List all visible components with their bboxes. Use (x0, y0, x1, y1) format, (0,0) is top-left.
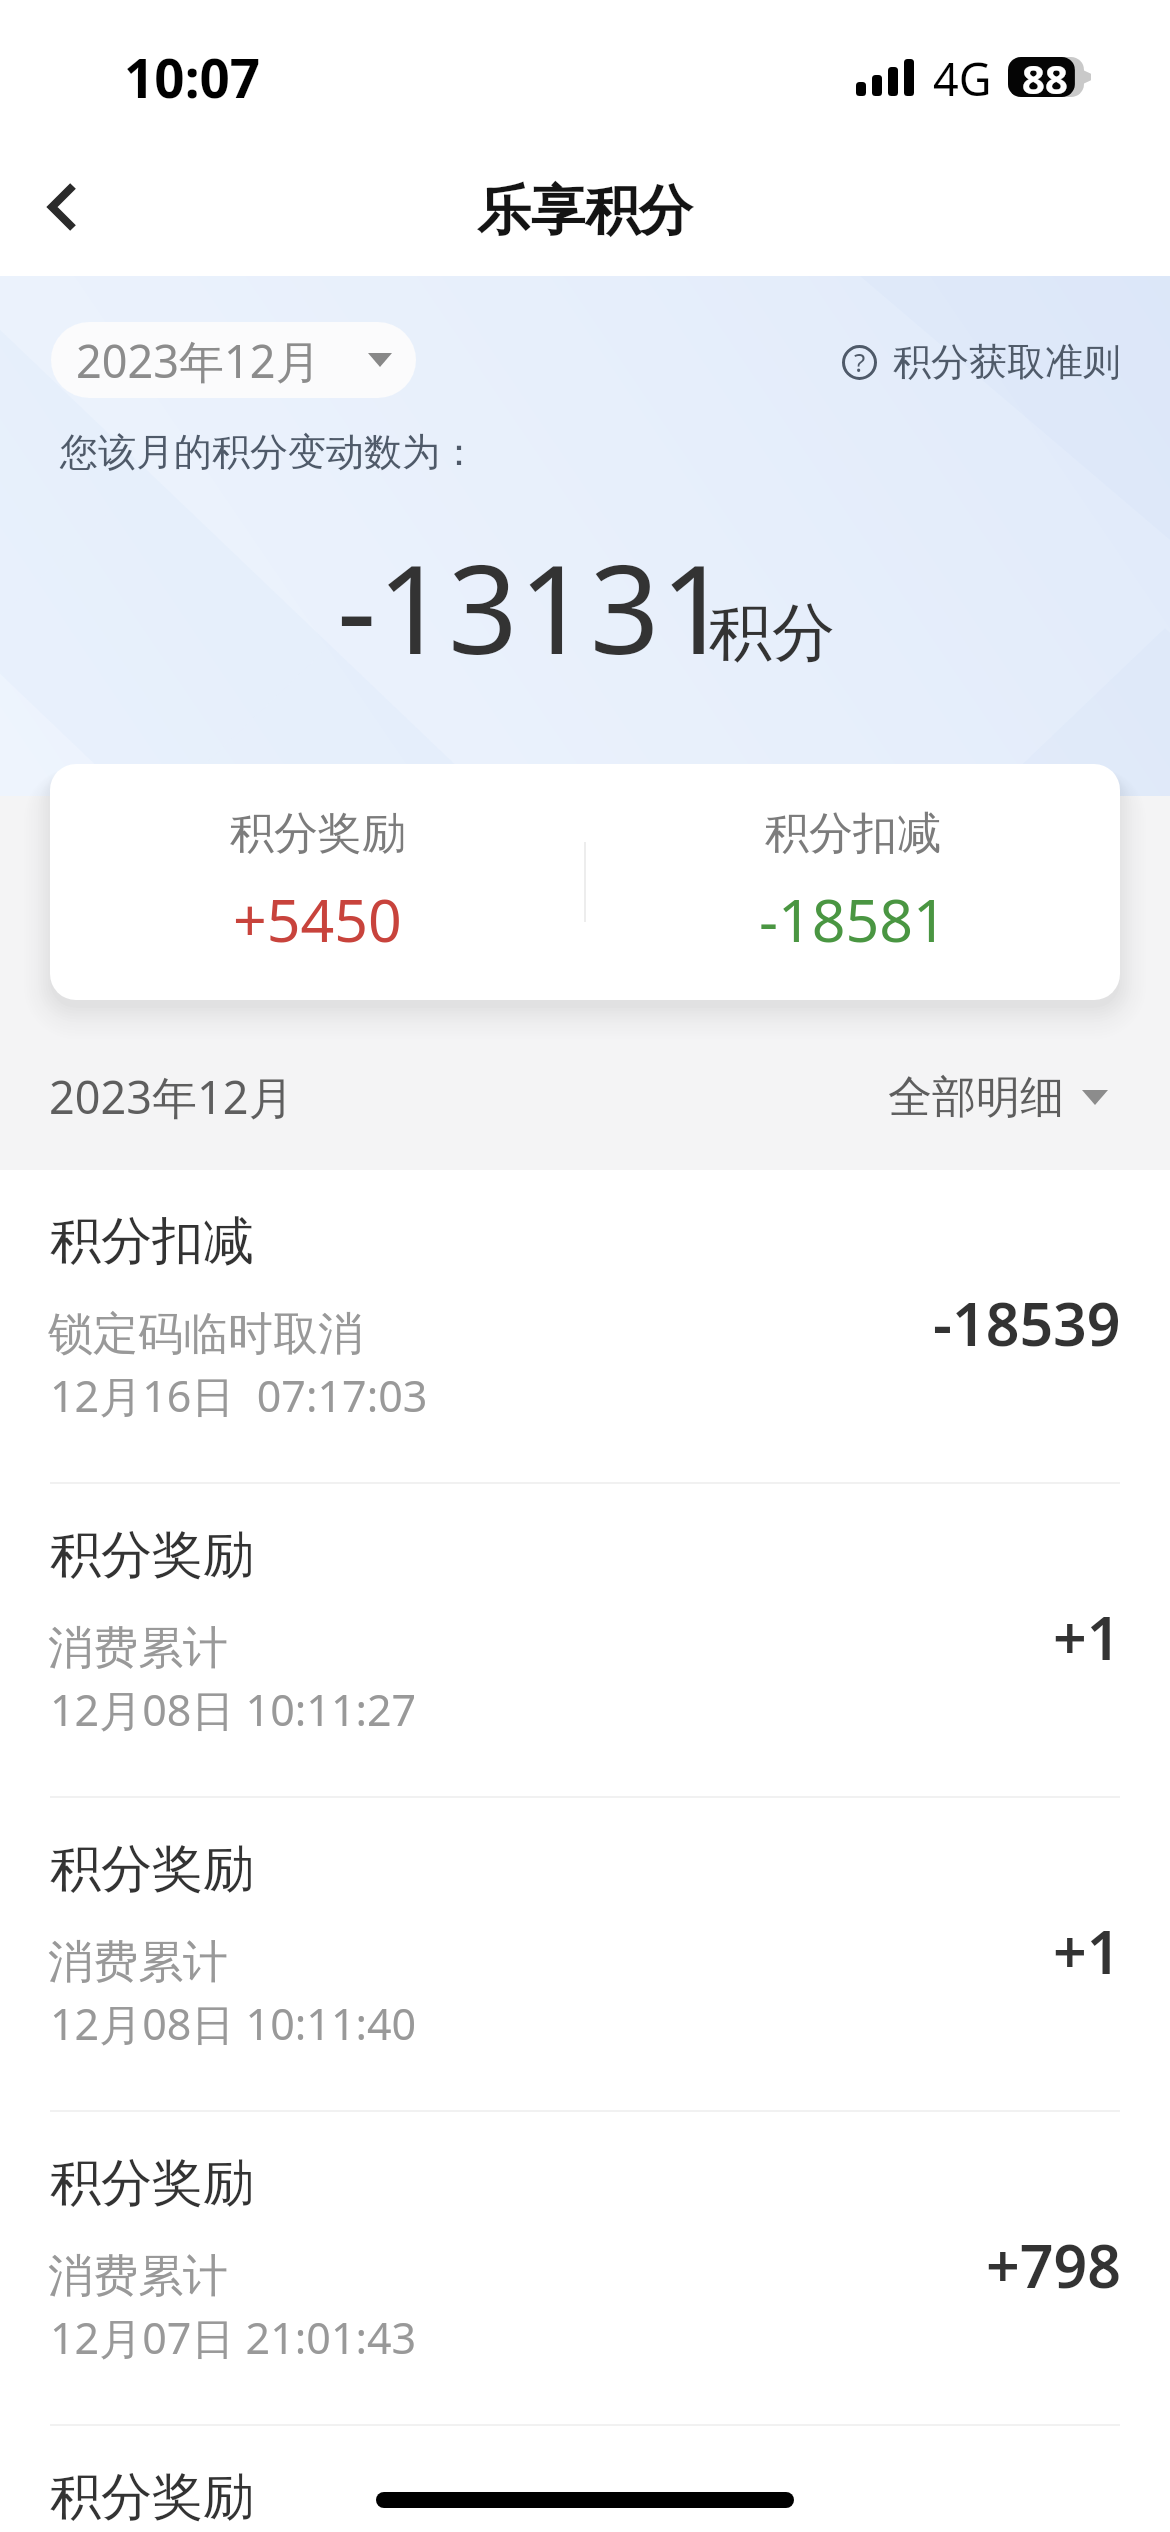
staticText: 积分奖励 (50, 2151, 254, 2215)
staticText: 积分奖励 (50, 1523, 254, 1587)
button[interactable]: 积分奖励 (0, 2426, 1170, 2532)
staticText: 2023年12月 (76, 330, 321, 391)
staticText: 您该月的积分变动数为： (60, 428, 478, 476)
staticText: -18539 (933, 1283, 1121, 1363)
staticText: 2023年12月 (49, 1066, 294, 1127)
staticText: +5450 (233, 879, 402, 959)
button[interactable]: Back (10, 149, 114, 265)
staticText: 积分奖励 (230, 806, 406, 861)
staticText: 消费累计 (48, 1934, 228, 1991)
button[interactable]: 积分奖励 (0, 1484, 1170, 1798)
staticText: 消费累计 (48, 1620, 228, 1677)
staticText: 12月08日 10:11:40 (50, 1994, 417, 2053)
staticText: +798 (986, 2225, 1121, 2305)
staticText: 锁定码临时取消 (48, 1306, 363, 1363)
button[interactable]: 积分奖励 (0, 1798, 1170, 2112)
staticText: 乐享积分 (477, 177, 693, 245)
staticText: 积分获取准则 (893, 338, 1121, 386)
staticText: 12月16日 07:17:03 (50, 1366, 428, 1425)
staticText: +1 (1053, 1911, 1121, 1991)
staticText: 全部明细 (888, 1070, 1064, 1125)
button[interactable]: 积分奖励 (0, 2112, 1170, 2426)
staticText: 12月08日 10:11:27 (50, 1680, 417, 1739)
button[interactable]: 2023年12月 (51, 322, 416, 398)
staticText: 积分 (709, 593, 835, 672)
button[interactable]: 积分扣减 (585, 764, 1120, 1000)
staticText: 12月07日 21:01:43 (50, 2308, 417, 2367)
staticText: +1 (1053, 1597, 1121, 1677)
staticText: 4G (933, 48, 992, 109)
staticText: 88 (1022, 51, 1068, 105)
staticText: 积分奖励 (50, 2465, 254, 2529)
staticText: 积分扣减 (765, 806, 941, 861)
button[interactable]: 积分奖励 (50, 764, 585, 1000)
staticText: -18581 (759, 879, 947, 959)
staticText: ? (854, 344, 866, 379)
staticText: 积分奖励 (50, 1837, 254, 1901)
staticText: 10:07 (124, 41, 261, 113)
button[interactable]: ? (842, 336, 1121, 388)
button[interactable]: 积分扣减 (0, 1170, 1170, 1484)
staticText: 积分扣减 (50, 1209, 254, 1273)
staticText: 消费累计 (48, 2248, 228, 2305)
button[interactable]: 全部明细 (888, 1067, 1108, 1127)
staticText: -13131 (337, 524, 732, 690)
